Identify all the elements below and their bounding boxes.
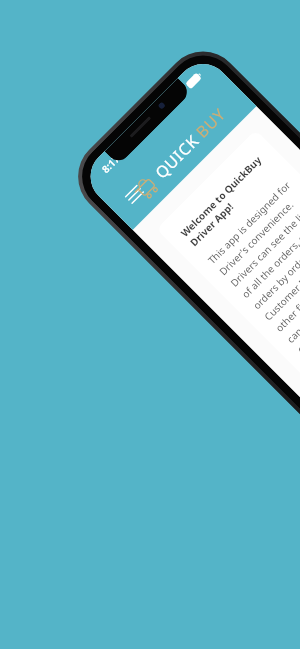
staticText: This app is designed for Driver's conven…	[205, 178, 300, 379]
staticText: BUY	[191, 103, 230, 142]
button[interactable]: Menu	[116, 176, 153, 213]
staticText: QUICK	[150, 130, 203, 183]
staticText: 8:17	[99, 152, 122, 176]
staticText: Welcome to QuickBuy Driver App!	[178, 151, 275, 249]
